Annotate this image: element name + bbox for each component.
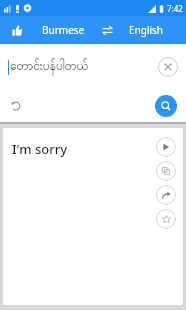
staticText: English bbox=[129, 23, 164, 37]
button[interactable]: Share translation bbox=[156, 185, 176, 205]
button[interactable]: Rate translation bbox=[8, 21, 26, 39]
button[interactable]: Play translation bbox=[156, 137, 176, 157]
button[interactable]: Undo bbox=[7, 97, 25, 115]
button[interactable]: Save translation bbox=[156, 209, 176, 229]
staticText: Burmese bbox=[42, 23, 85, 37]
button[interactable]: တောင်းပန်ပါတယ် bbox=[10, 58, 158, 76]
button[interactable]: Copy translation bbox=[156, 161, 176, 181]
button[interactable]: Burmese bbox=[38, 20, 89, 40]
button[interactable]: Clear text bbox=[158, 57, 178, 77]
button[interactable]: Search bbox=[155, 95, 177, 117]
staticText: 7:42 bbox=[167, 3, 183, 14]
staticText: I'm sorry bbox=[12, 140, 68, 158]
staticText: တောင်းပန်ပါတယ် bbox=[10, 58, 89, 76]
button[interactable]: Swap languages bbox=[99, 22, 115, 38]
button[interactable]: English bbox=[125, 20, 168, 40]
